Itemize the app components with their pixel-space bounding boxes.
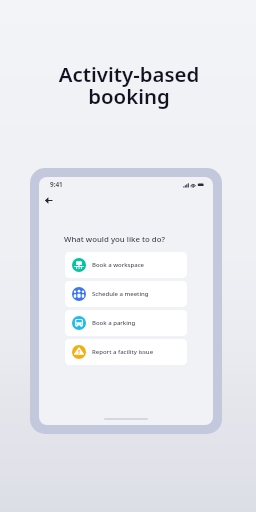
staticText: What would you like to do? <box>64 234 165 245</box>
staticText: Book a workspace <box>92 261 145 269</box>
staticText: Activity-based booking <box>29 60 229 110</box>
staticText: Book a parking <box>92 319 136 327</box>
button[interactable]: Schedule a meeting <box>65 281 187 307</box>
staticText: Schedule a meeting <box>92 290 149 298</box>
button[interactable]: Report a facility issue <box>65 339 187 365</box>
button[interactable]: Book a parking <box>65 310 187 336</box>
button[interactable]: Back <box>40 192 56 208</box>
staticText: Report a facility issue <box>92 348 154 356</box>
button[interactable]: Book a workspace <box>65 252 187 278</box>
staticText: 9:41 <box>50 180 63 188</box>
